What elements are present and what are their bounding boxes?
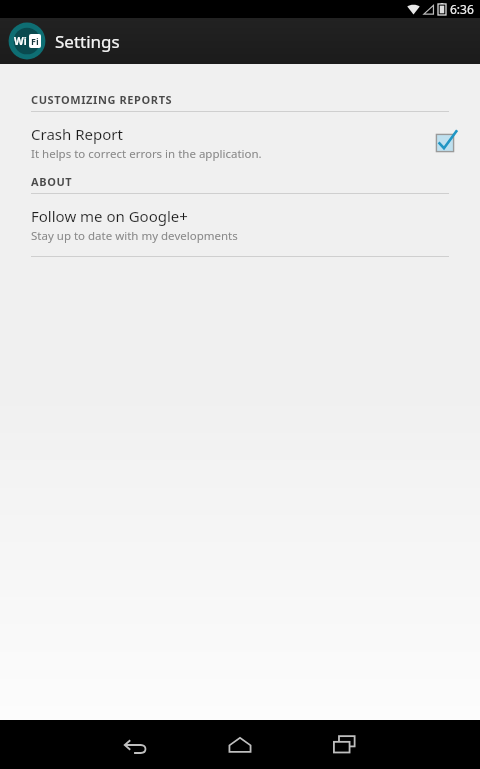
button[interactable]: Crash Report toggle xyxy=(432,130,458,156)
button[interactable]: Back xyxy=(110,720,162,769)
staticText: Fi xyxy=(31,35,39,47)
staticText: Settings xyxy=(55,30,120,53)
button[interactable]: Wi xyxy=(8,22,126,60)
staticText: Stay up to date with my developments xyxy=(31,228,238,244)
button[interactable]: Crash Report xyxy=(0,112,480,174)
staticText: ABOUT xyxy=(31,174,73,189)
button[interactable]: Home xyxy=(214,720,266,769)
staticText: Wi xyxy=(14,34,27,48)
button[interactable]: Recents xyxy=(318,720,370,769)
staticText: It helps to correct errors in the applic… xyxy=(31,146,262,162)
staticText: 6:36 xyxy=(450,1,474,17)
staticText: Crash Report xyxy=(31,124,123,144)
staticText: Follow me on Google+ xyxy=(31,206,188,226)
staticText: CUSTOMIZING REPORTS xyxy=(31,92,173,107)
button[interactable]: Follow me on Google+ xyxy=(0,194,480,256)
